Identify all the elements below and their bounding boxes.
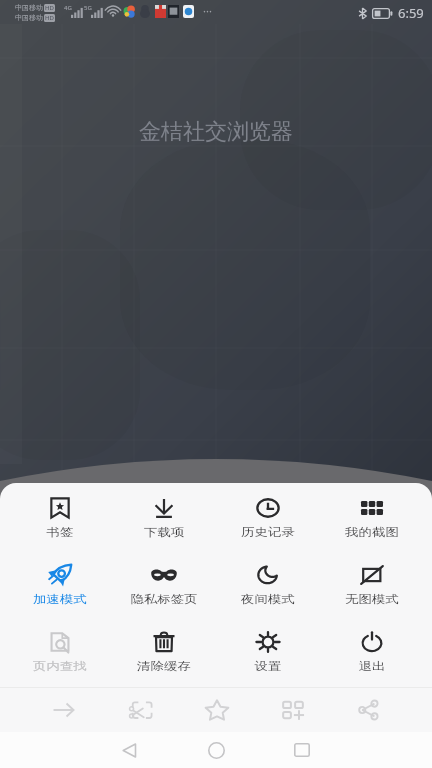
staticText: 中国移动	[15, 13, 43, 22]
button[interactable]: 清除缓存	[112, 617, 216, 684]
button[interactable]: 加速模式	[8, 550, 112, 617]
staticText: 设置	[255, 659, 281, 672]
staticText: ···	[203, 3, 212, 18]
staticText: 加速模式	[33, 592, 87, 605]
staticText: 6:59	[398, 4, 424, 22]
staticText: HD	[45, 14, 54, 22]
staticText: 金桔社交浏览器	[139, 118, 293, 146]
button[interactable]: Recents	[281, 732, 323, 768]
staticText: 隐私标签页	[130, 592, 198, 605]
staticText: 中国移动	[15, 3, 43, 12]
staticText: 4G	[64, 4, 72, 12]
button[interactable]: 夜间模式	[216, 550, 320, 617]
staticText: HD	[45, 4, 54, 12]
button[interactable]: 书签	[8, 483, 112, 550]
staticText: 历史记录	[241, 525, 295, 538]
button[interactable]: 页内查找	[8, 617, 112, 684]
button[interactable]: 退出	[320, 617, 424, 684]
button[interactable]: 隐私标签页	[112, 550, 216, 617]
staticText: 书签	[47, 525, 73, 538]
staticText: 退出	[359, 659, 385, 672]
button[interactable]: Home	[195, 732, 237, 768]
button[interactable]: 无图模式	[320, 550, 424, 617]
staticText: 下载项	[144, 525, 184, 538]
button[interactable]: Screenshot	[102, 687, 179, 732]
button[interactable]: Share	[331, 687, 407, 732]
staticText: 无图模式	[345, 592, 399, 605]
staticText: 清除缓存	[137, 659, 191, 672]
button[interactable]: Add bookmark	[179, 687, 255, 732]
button[interactable]: 下载项	[112, 483, 216, 550]
button[interactable]: 设置	[216, 617, 320, 684]
staticText: 页内查找	[33, 659, 87, 672]
button[interactable]: 历史记录	[216, 483, 320, 550]
button[interactable]: Forward	[25, 687, 102, 732]
button[interactable]: Tabs	[255, 687, 331, 732]
staticText: 5G	[84, 4, 92, 12]
staticText: 夜间模式	[241, 592, 295, 605]
button[interactable]: 我的截图	[320, 483, 424, 550]
staticText: 我的截图	[345, 525, 399, 538]
button[interactable]: Back	[108, 732, 150, 768]
